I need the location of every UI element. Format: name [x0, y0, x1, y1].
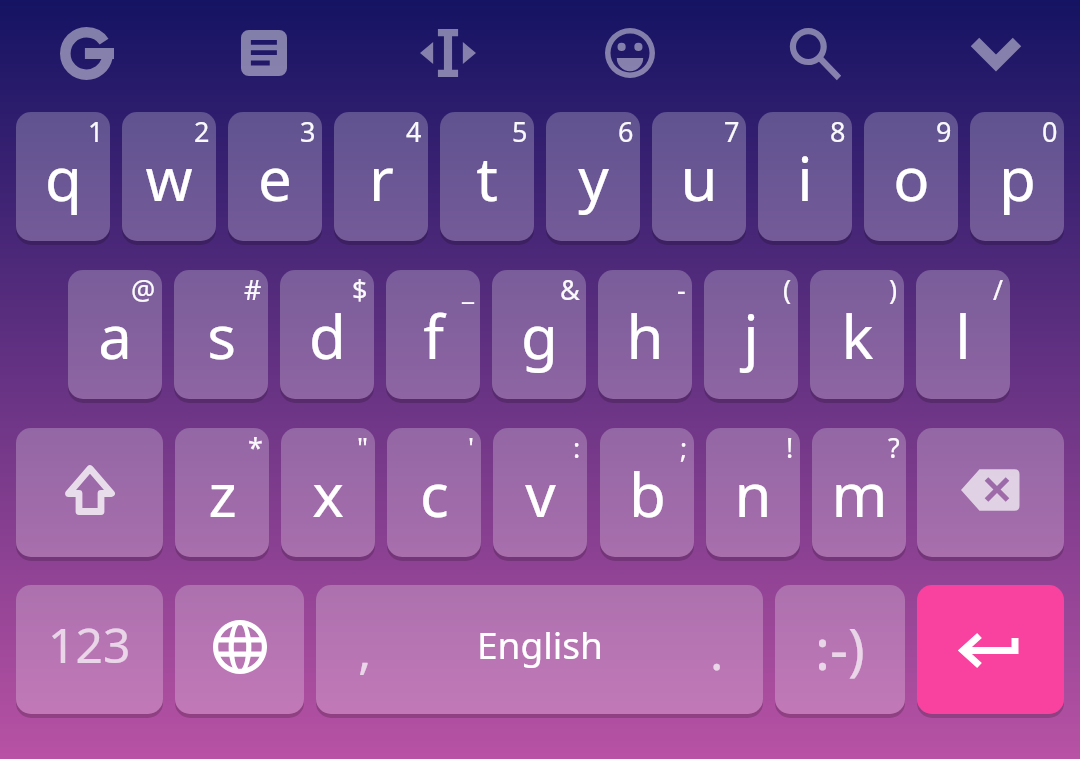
staticText: ': [468, 429, 475, 466]
staticText: k: [841, 295, 874, 377]
staticText: *: [248, 429, 263, 466]
staticText: n: [734, 453, 772, 535]
staticText: 0: [1042, 113, 1058, 150]
button[interactable]: ): [810, 270, 904, 399]
button[interactable]: Shift: [16, 428, 163, 557]
button[interactable]: Emoji: [577, 0, 683, 106]
button[interactable]: 7: [652, 112, 746, 241]
button[interactable]: (: [704, 270, 798, 399]
button[interactable]: Clipboard: [211, 0, 317, 106]
staticText: t: [476, 137, 498, 219]
staticText: a: [98, 295, 132, 377]
staticText: ): [889, 271, 898, 308]
staticText: 123: [48, 612, 131, 677]
staticText: ?: [888, 429, 900, 466]
button[interactable]: *: [175, 428, 269, 557]
staticText: ;: [680, 429, 688, 466]
staticText: y: [578, 137, 609, 219]
button[interactable]: Backspace: [917, 428, 1064, 557]
staticText: 7: [724, 113, 740, 150]
staticText: ,: [358, 616, 372, 684]
button[interactable]: 3: [228, 112, 322, 241]
staticText: d: [309, 295, 346, 377]
staticText: 3: [300, 113, 316, 150]
staticText: &: [560, 271, 580, 308]
staticText: $: [352, 271, 368, 308]
staticText: 9: [936, 113, 952, 150]
staticText: .: [710, 617, 724, 685]
staticText: q: [45, 137, 82, 219]
button[interactable]: 2: [122, 112, 216, 241]
button[interactable]: Move cursor: [395, 0, 501, 106]
button[interactable]: 8: [758, 112, 852, 241]
staticText: r: [369, 137, 394, 219]
staticText: z: [208, 453, 237, 535]
staticText: (: [783, 271, 792, 308]
button[interactable]: #: [174, 270, 268, 399]
staticText: e: [258, 137, 292, 219]
staticText: h: [626, 295, 664, 377]
staticText: s: [207, 295, 236, 377]
button[interactable]: Change language: [175, 585, 304, 714]
staticText: :: [573, 429, 581, 466]
staticText: w: [145, 137, 193, 219]
staticText: j: [743, 295, 759, 377]
button[interactable]: -: [598, 270, 692, 399]
staticText: p: [999, 137, 1036, 219]
staticText: 5: [512, 113, 528, 150]
button[interactable]: 123: [16, 585, 163, 714]
button[interactable]: !: [706, 428, 800, 557]
staticText: :-): [815, 610, 865, 686]
button[interactable]: ': [387, 428, 481, 557]
button[interactable]: 4: [334, 112, 428, 241]
button[interactable]: _: [386, 270, 480, 399]
staticText: #: [244, 271, 262, 308]
staticText: m: [831, 453, 888, 535]
staticText: 6: [618, 113, 634, 150]
button[interactable]: 1: [16, 112, 110, 241]
button[interactable]: 6: [546, 112, 640, 241]
staticText: 8: [830, 113, 846, 150]
button[interactable]: ": [281, 428, 375, 557]
button[interactable]: ?: [812, 428, 906, 557]
staticText: ": [357, 429, 369, 466]
staticText: b: [629, 453, 666, 535]
button[interactable]: Search: [757, 0, 863, 106]
staticText: o: [893, 137, 930, 219]
button[interactable]: Google: [33, 0, 139, 106]
staticText: /: [993, 271, 1004, 308]
button[interactable]: English: [316, 585, 763, 714]
button[interactable]: Enter: [917, 585, 1064, 714]
button[interactable]: ;: [600, 428, 694, 557]
staticText: 1: [88, 113, 104, 150]
button[interactable]: :: [493, 428, 587, 557]
staticText: !: [786, 429, 794, 466]
staticText: g: [521, 295, 558, 377]
button[interactable]: :-): [775, 585, 905, 714]
button[interactable]: Hide keyboard: [943, 0, 1049, 106]
button[interactable]: /: [916, 270, 1010, 399]
staticText: x: [312, 453, 344, 535]
staticText: 4: [406, 113, 422, 150]
staticText: i: [797, 137, 813, 219]
staticText: 2: [194, 113, 210, 150]
staticText: _: [462, 271, 474, 308]
staticText: c: [420, 453, 449, 535]
staticText: f: [423, 295, 444, 377]
staticText: -: [677, 271, 686, 308]
button[interactable]: &: [492, 270, 586, 399]
button[interactable]: $: [280, 270, 374, 399]
staticText: @: [131, 271, 156, 308]
button[interactable]: 5: [440, 112, 534, 241]
staticText: l: [955, 295, 971, 377]
button[interactable]: 9: [864, 112, 958, 241]
button[interactable]: @: [68, 270, 162, 399]
staticText: English: [477, 619, 603, 669]
staticText: v: [525, 453, 556, 535]
button[interactable]: 0: [970, 112, 1064, 241]
staticText: u: [680, 137, 718, 219]
